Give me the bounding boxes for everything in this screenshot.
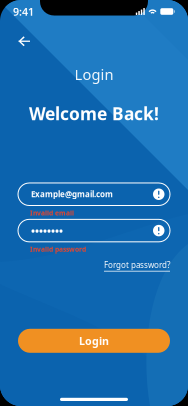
button[interactable]: Back — [0, 27, 42, 55]
staticText: Login — [79, 334, 109, 348]
staticText: •••••••• — [31, 223, 63, 238]
button[interactable]: Forgot password? — [18, 254, 170, 271]
staticText: Login — [74, 64, 113, 84]
staticText: Forgot password? — [104, 260, 170, 270]
staticText: Example@gmail.com — [31, 189, 113, 199]
staticText: Invalid password — [30, 245, 86, 254]
staticText: 9:41 — [13, 4, 34, 19]
staticText: Welcome Back! — [29, 102, 159, 125]
button[interactable]: Login — [18, 329, 170, 353]
staticText: Invalid email — [30, 208, 74, 217]
